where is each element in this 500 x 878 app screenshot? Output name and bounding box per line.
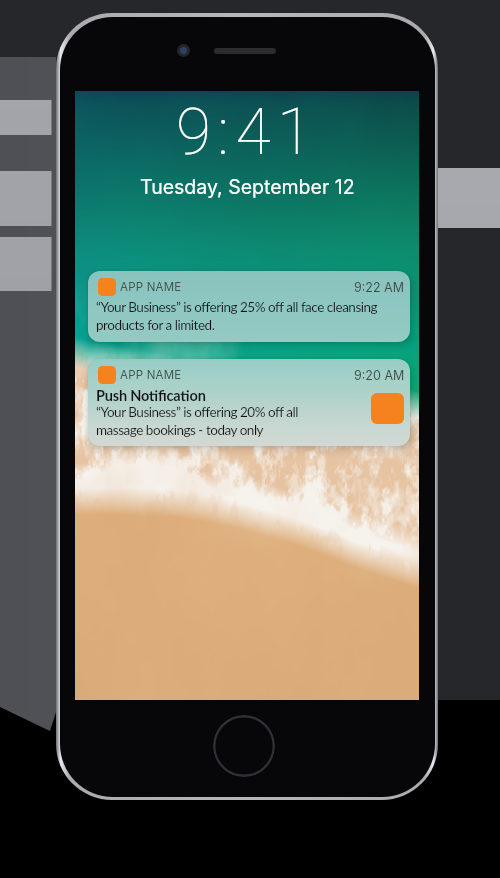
staticText: 9:20 AM [354, 368, 405, 383]
staticText: APP NAME [120, 368, 182, 382]
button[interactable]: APP NAME [88, 359, 410, 446]
staticText: Tuesday, September 12 [140, 175, 355, 199]
staticText: 9:22 AM [354, 280, 405, 295]
staticText: 9:41 [176, 95, 319, 170]
staticText: Push Notification [96, 387, 206, 404]
staticText: “Your Business” is offering 25% off all … [96, 299, 378, 333]
staticText: “Your Business” is offering 20% off all … [96, 404, 298, 438]
button[interactable]: Home [213, 715, 275, 777]
staticText: APP NAME [120, 280, 182, 294]
button[interactable]: APP NAME [88, 271, 410, 342]
